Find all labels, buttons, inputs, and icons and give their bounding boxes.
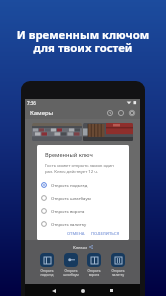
staticText: Открыть подъезд (51, 182, 88, 188)
button[interactable]: Recents (108, 287, 115, 294)
button[interactable]: Открыть шлагбаум (37, 191, 129, 204)
button[interactable]: History (104, 107, 115, 118)
staticText: Открыть калитку (51, 221, 87, 227)
staticText: Ключи (73, 244, 87, 250)
button[interactable]: Home (79, 287, 86, 294)
staticText: Временный ключ (45, 151, 93, 158)
staticText: Открыть ворота (51, 208, 85, 214)
staticText: Открыть подъезд (40, 269, 54, 277)
button[interactable]: Открыть шлагбаум (62, 253, 80, 277)
staticText: Открыть ворота (87, 269, 101, 277)
button[interactable]: Back (50, 287, 57, 294)
button[interactable]: ОТМЕНА (66, 230, 86, 236)
button[interactable]: Открыть подъезд (38, 253, 56, 277)
staticText: Открыть калитку (111, 269, 125, 277)
button[interactable]: Открыть ворота (37, 204, 129, 217)
staticText: И временным ключом для твоих гостей (0, 27, 166, 56)
button[interactable]: Settings (126, 107, 137, 118)
button[interactable]: Открыть подъезд (37, 178, 129, 191)
button[interactable]: Открыть калитку (37, 217, 129, 230)
button[interactable]: Открыть калитку (109, 253, 127, 277)
button[interactable]: Call (115, 107, 126, 118)
staticText: Гость может открыть замок один раз. Ключ… (45, 162, 123, 174)
staticText: Камеры (30, 109, 54, 117)
button[interactable]: Открыть ворота (85, 253, 103, 277)
staticText: 7:36 (27, 100, 36, 106)
button[interactable]: ПОДЕЛИТЬСЯ (90, 230, 121, 236)
staticText: Открыть шлагбаум (51, 195, 91, 201)
staticText: Открыть шлагбаум (63, 269, 79, 277)
